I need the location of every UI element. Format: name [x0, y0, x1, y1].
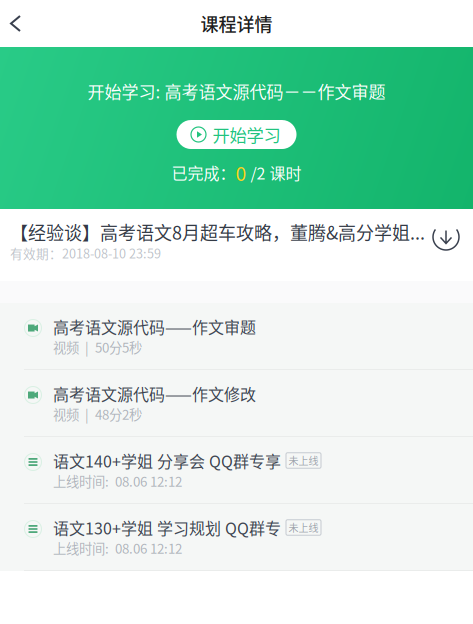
button[interactable]: 开始学习: [176, 120, 296, 149]
staticText: 高考语文源代码——作文修改: [53, 382, 256, 405]
staticText: 开始学习: 高考语文源代码－－作文审题: [87, 79, 385, 103]
staticText: 开始学习: [212, 122, 280, 147]
staticText: 有效期：2018-08-10 23:59: [10, 244, 161, 262]
staticText: 上线时间: 08.06 12:12: [53, 538, 182, 558]
staticText: /2 课时: [246, 161, 301, 184]
staticText: 未上线: [288, 520, 318, 535]
button[interactable]: 高考语文源代码——作文审题: [0, 303, 473, 370]
button[interactable]: 语文140+学姐 分享会 QQ群专享: [0, 437, 473, 504]
staticText: 视频 | 50分5秒: [53, 337, 142, 357]
staticText: 上线时间: 08.06 12:12: [53, 471, 182, 491]
staticText: 视频 | 48分2秒: [53, 404, 142, 424]
staticText: 0: [235, 158, 246, 186]
staticText: 已完成：: [171, 161, 235, 184]
button[interactable]: 高考语文源代码——作文修改: [0, 370, 473, 437]
staticText: 未上线: [288, 453, 318, 468]
button[interactable]: Back: [0, 2, 36, 45]
staticText: 课程详情: [200, 10, 272, 37]
staticText: 【经验谈】高考语文8月超车攻略，董腾&高分学姐...: [10, 219, 425, 245]
staticText: 语文130+学姐 学习规划 QQ群专: [53, 516, 281, 539]
staticText: 语文140+学姐 分享会 QQ群专享: [53, 449, 281, 472]
button[interactable]: Download: [431, 222, 473, 252]
staticText: 高考语文源代码——作文审题: [53, 315, 256, 338]
button[interactable]: 语文130+学姐 学习规划 QQ群专: [0, 504, 473, 571]
